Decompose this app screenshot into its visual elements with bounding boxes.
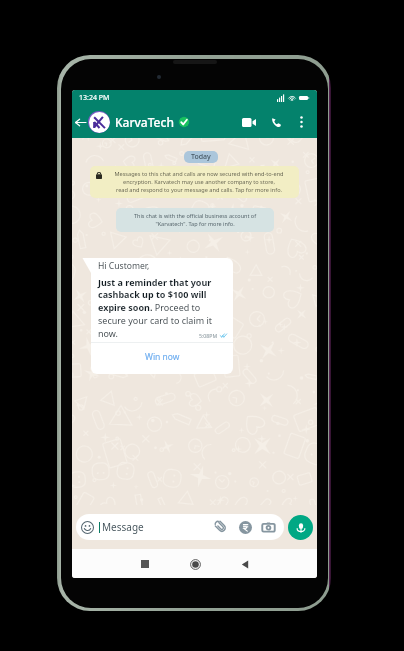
button[interactable]: Home [183, 552, 207, 576]
button[interactable]: Win now [91, 343, 233, 374]
button[interactable]: Profile [88, 111, 110, 133]
button[interactable]: Voice call [264, 106, 289, 138]
staticText: Today [191, 152, 211, 162]
button[interactable]: Message [76, 514, 284, 540]
staticText: KarvaTech [115, 114, 174, 130]
staticText: Messages to this chat and calls are now … [106, 170, 292, 194]
staticText: Win now [145, 351, 180, 363]
staticText: Message [102, 520, 144, 534]
button[interactable]: Back [72, 106, 88, 138]
staticText: Just a reminder that your cashback up to… [98, 276, 227, 340]
button[interactable]: Back [233, 552, 257, 576]
button[interactable]: Video call [234, 106, 264, 138]
button[interactable]: More options [289, 106, 314, 138]
staticText: 13:24 PM [79, 93, 110, 103]
button[interactable]: This chat is with the official business … [116, 208, 274, 232]
staticText: 5:08PM [199, 332, 218, 339]
button[interactable]: Today [184, 151, 218, 163]
button[interactable]: Hi Customer, [91, 258, 233, 374]
button[interactable]: Messages to this chat and calls are now … [90, 166, 299, 198]
button[interactable]: Voice message [288, 515, 313, 540]
button[interactable]: Recents [133, 552, 157, 576]
staticText: This chat is with the official business … [124, 212, 266, 228]
staticText: Hi Customer, [98, 260, 150, 272]
